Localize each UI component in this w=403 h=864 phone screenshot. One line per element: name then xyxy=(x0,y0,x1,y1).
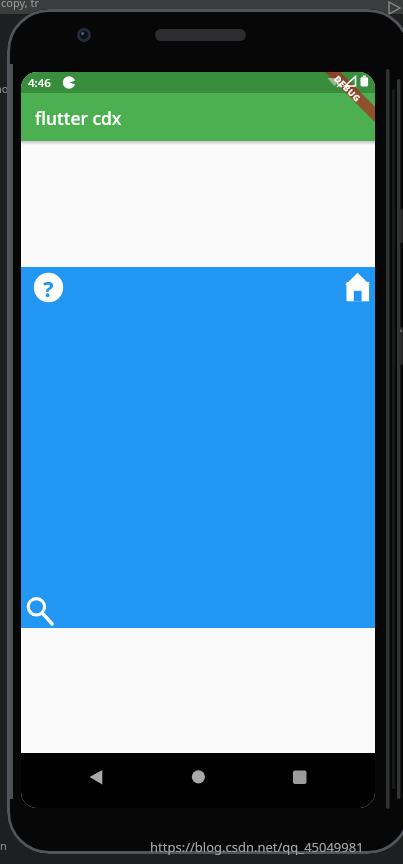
button[interactable] xyxy=(285,762,315,792)
button[interactable] xyxy=(22,591,60,631)
button[interactable] xyxy=(341,268,375,304)
staticText: DEBUG xyxy=(332,73,363,105)
staticText: 4:46 xyxy=(28,75,51,91)
staticText: https://blog.csdn.net/qq_45049981 xyxy=(150,838,364,856)
button[interactable] xyxy=(79,762,113,792)
staticText: no xyxy=(0,81,9,96)
staticText: n xyxy=(0,838,7,853)
button[interactable]: ? xyxy=(33,272,64,303)
staticText: flutter cdx xyxy=(35,106,122,130)
button[interactable] xyxy=(21,267,375,628)
staticText: copy, tr xyxy=(1,0,39,10)
button[interactable] xyxy=(183,762,213,792)
staticText: ? xyxy=(43,273,54,303)
